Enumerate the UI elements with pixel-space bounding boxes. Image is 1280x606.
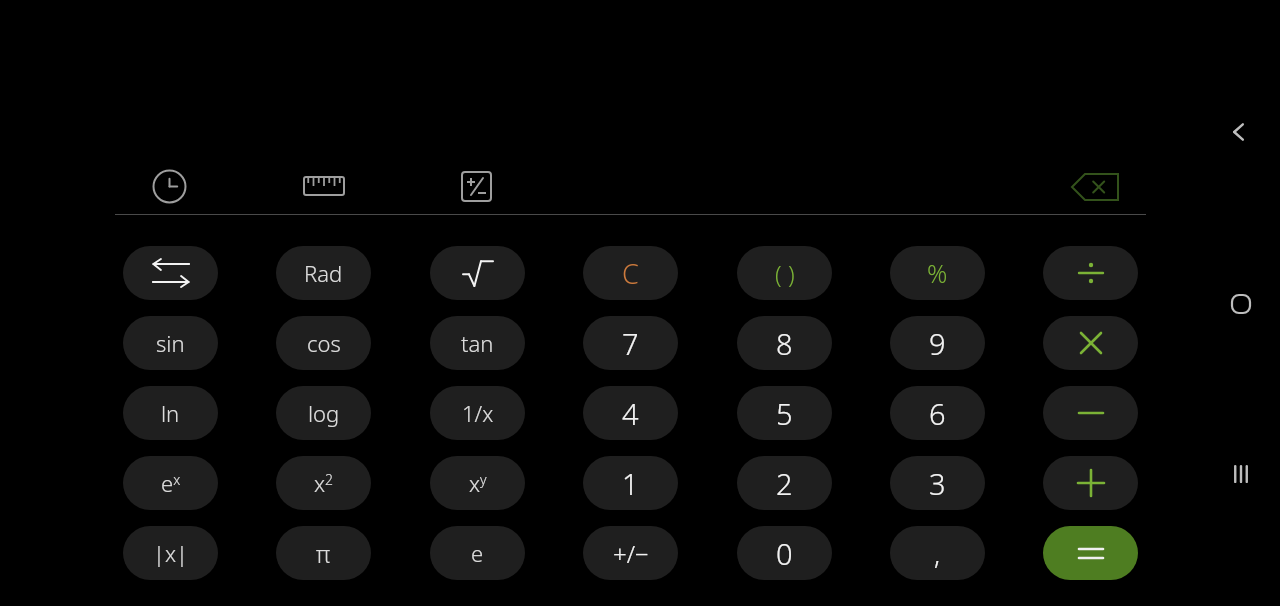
staticText: ln [161,398,180,428]
staticText: |x| [153,538,188,568]
staticText: x2 [314,468,334,498]
button[interactable]: ( ) [737,246,832,300]
button[interactable]: |x| [123,526,218,580]
button[interactable]: Back [1224,117,1254,147]
staticText: , [934,535,941,572]
staticText: Rad [304,258,343,288]
staticText: 3 [929,464,946,503]
button[interactable]: % [890,246,985,300]
button[interactable]: Unit converter [289,160,359,212]
staticText: 8 [776,324,793,363]
button[interactable]: 5 [737,386,832,440]
button[interactable] [1043,386,1138,440]
button[interactable]: 0 [737,526,832,580]
staticText: 9 [929,324,946,363]
staticText: +/− [613,537,649,570]
button[interactable]: ex [123,456,218,510]
button[interactable] [1043,456,1138,510]
staticText: 7 [622,324,639,363]
staticText: xy [469,468,487,498]
button[interactable]: Sign and format [447,157,506,216]
staticText: 2 [776,464,793,503]
button[interactable]: xy [430,456,525,510]
staticText: 6 [929,394,946,433]
button[interactable]: Recents [1226,459,1256,489]
button[interactable] [1043,246,1138,300]
staticText: ex [161,468,181,498]
button[interactable] [1043,526,1138,580]
button[interactable]: ln [123,386,218,440]
staticText: e [471,538,484,568]
staticText: ( ) [775,257,795,290]
button[interactable]: log [276,386,371,440]
button[interactable]: 4 [583,386,678,440]
staticText: 4 [622,394,639,433]
staticText: tan [461,328,494,358]
button[interactable]: , [890,526,985,580]
button[interactable] [430,246,525,300]
button[interactable]: 7 [583,316,678,370]
staticText: cos [307,328,341,358]
staticText: π [316,538,331,569]
button[interactable]: 3 [890,456,985,510]
button[interactable]: e [430,526,525,580]
button[interactable]: π [276,526,371,580]
button[interactable]: 9 [890,316,985,370]
button[interactable]: Home [1226,289,1256,319]
button[interactable] [123,246,218,300]
staticText: log [308,398,340,428]
button[interactable]: 6 [890,386,985,440]
staticText: 1 [622,464,639,503]
staticText: sin [156,328,185,358]
button[interactable]: x2 [276,456,371,510]
button[interactable]: cos [276,316,371,370]
button[interactable]: +/− [583,526,678,580]
button[interactable]: C [583,246,678,300]
staticText: C [622,255,639,292]
button[interactable]: 1/x [430,386,525,440]
button[interactable] [1043,316,1138,370]
button[interactable]: 2 [737,456,832,510]
staticText: % [927,256,948,290]
button[interactable]: sin [123,316,218,370]
button[interactable]: 8 [737,316,832,370]
button[interactable]: History [138,155,201,218]
button[interactable]: Rad [276,246,371,300]
staticText: 0 [776,534,793,573]
button[interactable]: Backspace [1070,172,1120,202]
button[interactable]: 1 [583,456,678,510]
button[interactable]: tan [430,316,525,370]
staticText: 1/x [462,398,494,428]
staticText: 5 [776,394,793,433]
